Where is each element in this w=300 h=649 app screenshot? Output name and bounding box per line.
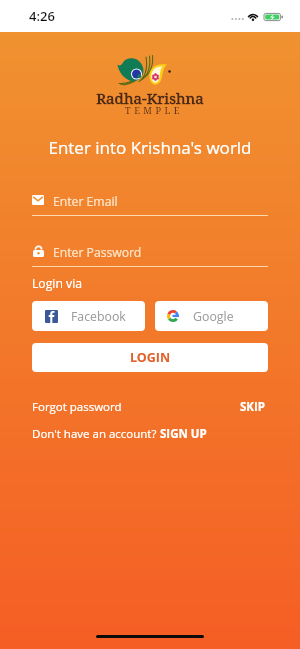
staticText: LOGIN	[130, 349, 171, 366]
staticText: TEMPLE	[4, 104, 300, 117]
button[interactable]: SKIP	[240, 399, 265, 415]
staticText: Login via	[32, 275, 83, 292]
staticText: Enter into Krishna's world	[0, 136, 300, 159]
button[interactable]: Forgot password	[32, 399, 122, 415]
staticText: SKIP	[240, 399, 265, 415]
button[interactable]: Enter Password	[32, 241, 268, 267]
staticText: Forgot password	[32, 399, 122, 415]
button[interactable]: Enter Email	[32, 190, 268, 216]
staticText: Enter Email	[53, 193, 118, 210]
staticText: Facebook	[71, 308, 126, 325]
staticText: Radha-Krishna	[0, 88, 300, 109]
staticText: Don't have an account?	[32, 426, 160, 442]
button[interactable]: Google	[155, 301, 268, 331]
button[interactable]: SIGN UP	[160, 426, 207, 442]
staticText: Enter Password	[53, 244, 142, 261]
staticText: 4:26	[29, 7, 55, 25]
staticText: SIGN UP	[160, 426, 207, 442]
button[interactable]: LOGIN	[32, 343, 268, 372]
button[interactable]: Facebook	[32, 301, 145, 331]
staticText: Google	[193, 308, 234, 325]
